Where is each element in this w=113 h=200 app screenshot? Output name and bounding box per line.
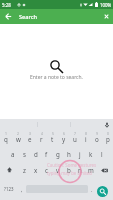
staticText: ?123 [4,186,14,192]
staticText: g [56,150,60,158]
staticText: b [67,166,71,174]
staticText: z [23,166,26,174]
button[interactable]: l [96,146,107,162]
button[interactable]: k [85,146,96,162]
button[interactable]: Voice input [100,119,113,130]
button[interactable]: Backspace [96,162,113,178]
button[interactable]: Clear [99,9,113,24]
staticText: f [45,150,48,158]
staticText: v [56,166,60,174]
staticText: r [40,135,43,143]
button[interactable]: 6 [58,130,69,146]
staticText: 0 [107,131,109,136]
button[interactable]: z [18,162,30,178]
button[interactable]: g [52,146,63,162]
button[interactable]: 2 [12,130,24,146]
staticText: j [79,150,81,158]
button[interactable]: Search [96,178,113,200]
staticText: o [95,135,99,143]
button[interactable]: 8 [80,130,91,146]
staticText: 100% [100,2,112,8]
staticText: 3 [29,131,31,136]
staticText: x [34,166,38,174]
button[interactable]: f [41,146,52,162]
staticText: u [73,135,77,143]
button[interactable]: 3 [24,130,36,146]
staticText: 2 [17,131,19,136]
staticText: 7 [74,131,76,136]
staticText: 6 [63,131,65,136]
button[interactable]: d [30,146,41,162]
staticText: y [62,135,66,143]
staticText: w [16,135,21,143]
staticText: h [67,150,71,158]
staticText: . [91,186,93,193]
button[interactable]: 1 [0,130,12,146]
button[interactable]: . [88,178,96,200]
staticText: p [106,135,110,143]
staticText: Search [19,13,37,21]
staticText: q [4,135,8,143]
staticText: 1 [5,131,7,136]
button[interactable]: h [63,146,74,162]
staticText: 9 [96,131,98,136]
staticText: 4 [41,131,43,136]
staticText: , [21,186,23,193]
staticText: Caution: Some gestures [47,162,97,168]
staticText: 8 [85,131,87,136]
staticText: 5:28 [2,2,11,8]
button[interactable]: n [74,162,85,178]
button[interactable]: Shift [0,162,18,178]
staticText: s [23,150,26,158]
button[interactable]: 4 [36,130,47,146]
button[interactable]: c [41,162,52,178]
staticText: n [78,166,82,174]
button[interactable]: 9 [91,130,102,146]
button[interactable]: x [30,162,41,178]
button[interactable]: 7 [69,130,80,146]
button[interactable]: 5 [47,130,58,146]
button[interactable]: 0 [102,130,113,146]
staticText: m [88,166,94,174]
staticText: i [85,135,87,143]
staticText: c [45,166,48,174]
button[interactable]: b [63,162,74,178]
staticText: e [28,135,32,143]
button[interactable]: , [18,178,26,200]
staticText: t [51,135,54,143]
staticText: d [34,150,38,158]
button[interactable]: v [52,162,63,178]
button[interactable]: ?123 [0,178,18,200]
button[interactable]: j [74,146,85,162]
staticText: Enter a note to search. [30,74,83,81]
button[interactable]: m [85,162,96,178]
button[interactable]: s [19,146,30,162]
staticText: 5 [52,131,54,136]
staticText: typing may be limited [47,170,92,176]
button[interactable]: a [7,146,19,162]
button[interactable]: Back [0,9,16,24]
staticText: k [89,150,93,158]
staticText: a [11,150,15,158]
staticText: l [101,150,103,158]
